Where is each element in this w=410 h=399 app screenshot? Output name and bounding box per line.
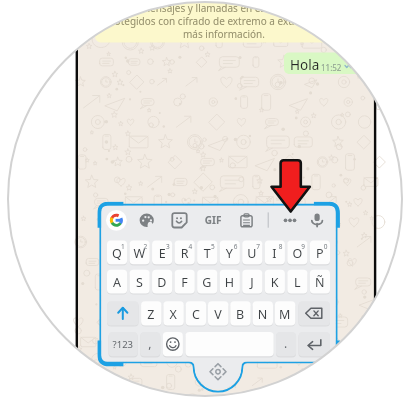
button[interactable]: Gboard toolbar tutorial: [0, 0, 410, 399]
